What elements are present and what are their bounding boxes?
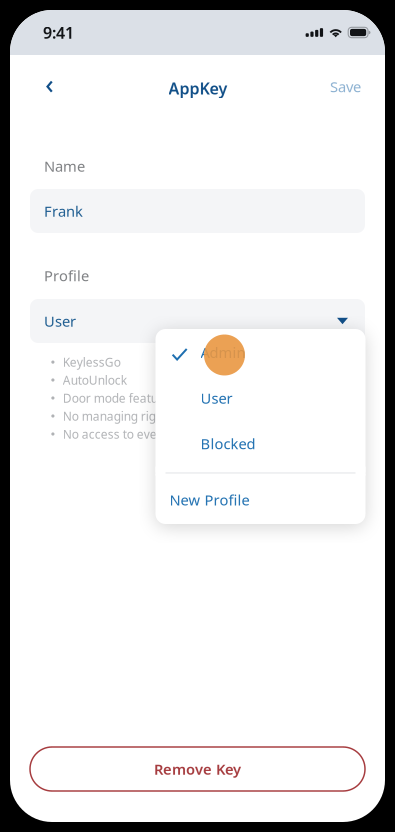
staticText: Door mode features (63, 390, 176, 406)
button[interactable]: Blocked (155, 420, 365, 466)
button[interactable]: Remove Key (30, 747, 365, 791)
button[interactable]: New Profile (155, 475, 365, 524)
staticText: Name (44, 156, 85, 176)
staticText: AppKey (168, 78, 227, 99)
button[interactable]: Save (316, 64, 376, 108)
staticText: KeylessGo (63, 354, 121, 370)
staticText: No managing rights (63, 408, 173, 424)
button[interactable]: Back (28, 65, 72, 109)
staticText: Remove Key (154, 759, 241, 779)
button[interactable]: User (30, 299, 365, 343)
staticText: AutoUnlock (63, 372, 127, 388)
staticText: Save (330, 77, 361, 96)
staticText: Frank (44, 201, 83, 221)
staticText: Admin (200, 342, 245, 362)
staticText: No access to events (63, 426, 174, 442)
staticText: 9:41 (43, 22, 74, 43)
button[interactable]: Admin (155, 329, 365, 375)
staticText: New Profile (169, 490, 249, 509)
staticText: User (200, 388, 232, 408)
button[interactable]: User (155, 375, 365, 420)
staticText: Blocked (200, 434, 255, 453)
staticText: Profile (44, 266, 89, 285)
staticText: User (44, 311, 76, 331)
